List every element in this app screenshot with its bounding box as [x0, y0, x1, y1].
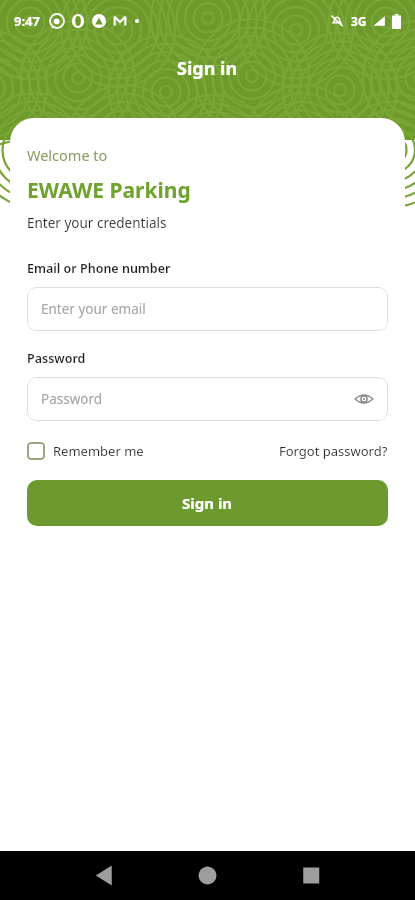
button[interactable]: Remember me	[27, 442, 144, 460]
button[interactable]: Enter your email	[27, 287, 388, 331]
staticText: Enter your credentials	[27, 214, 167, 232]
button[interactable]: Sign in	[27, 480, 388, 526]
button[interactable]: Password	[27, 377, 388, 421]
staticText: Enter your email	[41, 300, 146, 318]
staticText: 9:47	[14, 12, 40, 30]
button[interactable]: Forgot password?	[279, 442, 388, 460]
staticText: Password	[27, 350, 86, 367]
staticText: Password	[41, 390, 103, 408]
button[interactable]: Show password	[352, 387, 376, 411]
staticText: 3G	[351, 13, 367, 29]
staticText: Forgot password?	[279, 442, 388, 460]
staticText: EWAWE Parking	[27, 176, 191, 205]
staticText: Sign in	[177, 56, 238, 81]
staticText: Remember me	[53, 442, 144, 460]
staticText: Sign in	[182, 493, 233, 513]
staticText: Email or Phone number	[27, 260, 171, 277]
staticText: Welcome to	[27, 145, 108, 165]
